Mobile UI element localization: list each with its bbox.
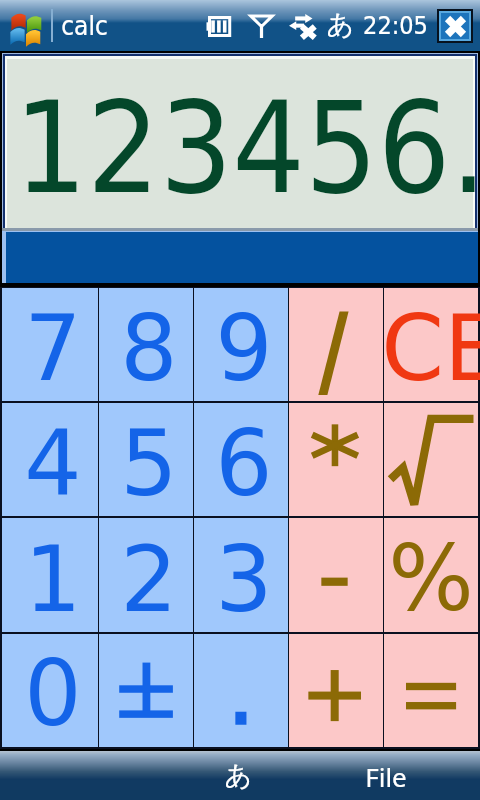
staticText: 6 (215, 411, 273, 516)
button[interactable]: 2 (99, 518, 193, 632)
staticText: 3 (215, 527, 273, 632)
button[interactable]: % (384, 518, 478, 632)
staticText: 2 (120, 527, 178, 632)
button[interactable]: Input method (216, 756, 260, 796)
button[interactable]: + (289, 634, 383, 747)
button[interactable]: CE (384, 288, 478, 401)
button[interactable]: = (384, 634, 478, 747)
button[interactable]: 4 (2, 403, 98, 516)
button[interactable]: - (289, 518, 383, 632)
staticText: CE (381, 296, 480, 401)
staticText: 8 (120, 296, 178, 401)
button[interactable]: 7 (2, 288, 98, 401)
staticText: % (388, 526, 474, 631)
button[interactable]: 9 (194, 288, 288, 401)
button[interactable]: 6 (194, 403, 288, 516)
button[interactable]: / (289, 288, 383, 401)
staticText: 9 (215, 296, 273, 401)
button[interactable]: 3 (194, 518, 288, 632)
staticText: 7 (24, 296, 82, 401)
button[interactable]: * (289, 403, 383, 516)
staticText: 123456. (14, 74, 480, 222)
button[interactable]: 8 (99, 288, 193, 401)
staticText: 1 (24, 527, 82, 632)
staticText: 22:05 (363, 11, 428, 40)
staticText: あ (224, 759, 252, 793)
button[interactable]: 5 (99, 403, 193, 516)
staticText: 4 (24, 411, 82, 516)
staticText: 0 (24, 641, 82, 746)
button[interactable]: 1 (2, 518, 98, 632)
button[interactable]: 0 (2, 634, 98, 747)
button[interactable]: . (194, 634, 288, 747)
button[interactable]: √ (384, 403, 478, 516)
button[interactable]: ± (99, 634, 193, 747)
staticText: 5 (120, 411, 178, 516)
staticText: File (365, 759, 407, 794)
button[interactable]: Close (441, 13, 469, 39)
button[interactable]: File (354, 756, 418, 796)
staticText: calc (61, 11, 108, 41)
button[interactable]: Start (9, 9, 43, 43)
staticText: あ (326, 8, 354, 42)
